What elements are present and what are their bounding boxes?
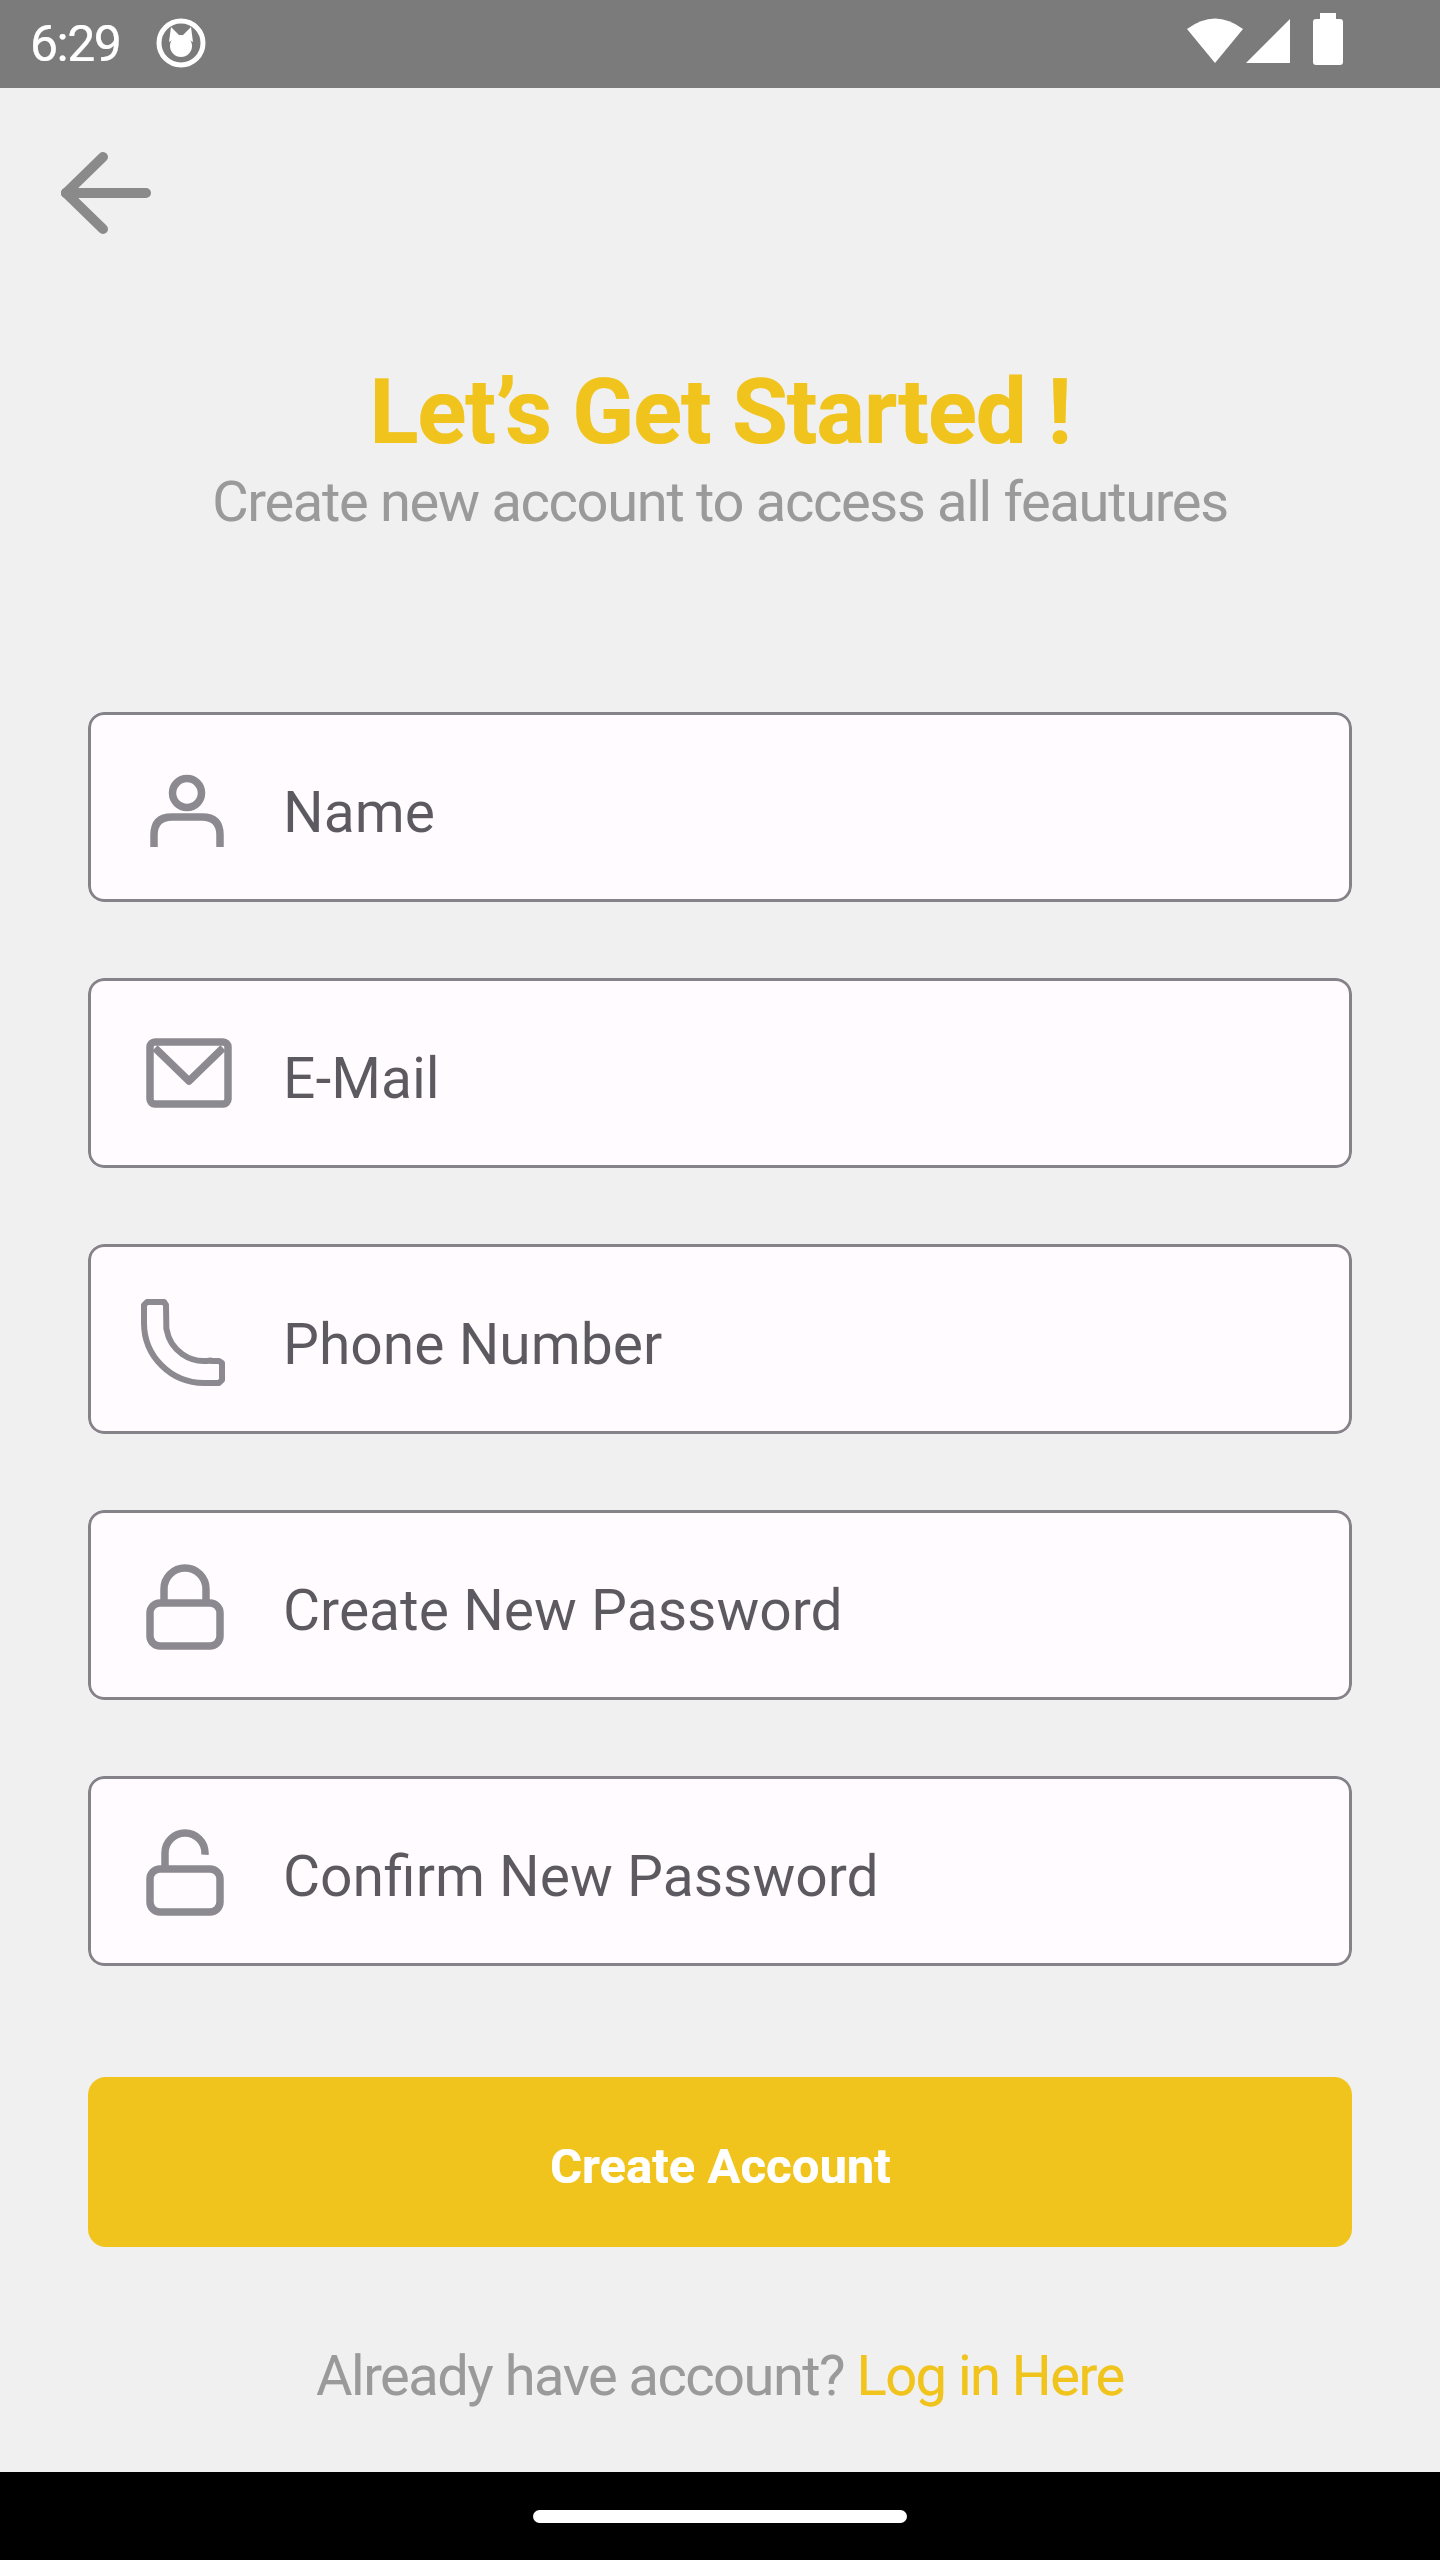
button[interactable]: Already have account? Log in Here (316, 2343, 1124, 2409)
button[interactable]: Phone Number (88, 1244, 1352, 1434)
button[interactable]: Create New Password (88, 1510, 1352, 1700)
staticText: Create New Password (283, 1577, 843, 1644)
staticText: Phone Number (283, 1311, 663, 1378)
button[interactable]: Create Account (88, 2077, 1352, 2247)
staticText: Name (283, 779, 435, 846)
staticText: Create new account to access all feautur… (0, 469, 1440, 535)
button[interactable]: Name (88, 712, 1352, 902)
staticText: Confirm New Password (283, 1843, 879, 1910)
staticText: E-Mail (283, 1045, 440, 1112)
button[interactable]: Confirm New Password (88, 1776, 1352, 1966)
staticText: Let’s Get Started ! (0, 359, 1440, 466)
staticText: Create Account (550, 2138, 891, 2195)
staticText: 6:29 (30, 15, 121, 74)
button[interactable]: E-Mail (88, 978, 1352, 1168)
button[interactable] (40, 130, 170, 256)
